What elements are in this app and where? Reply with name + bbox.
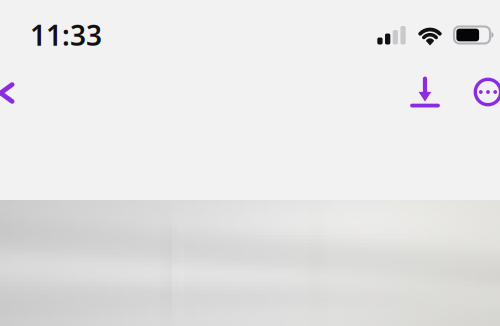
button[interactable]: Back [0, 70, 28, 114]
button[interactable]: More options [468, 70, 500, 114]
staticText: 11:33 [30, 16, 102, 54]
button[interactable]: Download [403, 70, 447, 114]
